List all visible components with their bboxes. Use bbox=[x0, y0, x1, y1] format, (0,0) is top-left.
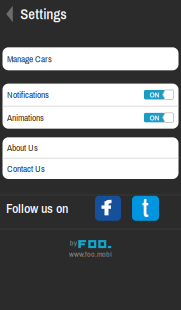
staticText: Manage Cars bbox=[7, 52, 52, 65]
staticText: Settings bbox=[20, 4, 66, 24]
button[interactable]: Contact Us bbox=[2, 158, 178, 179]
staticText: Follow us on bbox=[6, 199, 68, 217]
staticText: t bbox=[142, 191, 149, 225]
button[interactable]: Animations bbox=[2, 106, 178, 129]
staticText: Animations bbox=[7, 111, 44, 124]
staticText: ON bbox=[149, 89, 159, 100]
staticText: by bbox=[70, 237, 77, 248]
button[interactable]: About Us bbox=[2, 137, 178, 158]
staticText: www.foo.mobi bbox=[69, 249, 112, 259]
button[interactable]: Facebook bbox=[95, 196, 121, 221]
staticText: ON bbox=[149, 112, 159, 123]
button[interactable]: Settings bbox=[0, 0, 181, 28]
staticText: About Us bbox=[7, 141, 38, 154]
button[interactable]: Manage Cars bbox=[2, 47, 178, 70]
button[interactable]: Twitter bbox=[132, 196, 159, 221]
staticText: Notifications bbox=[7, 88, 49, 101]
staticText: Contact Us bbox=[7, 162, 45, 175]
button[interactable]: Notifications bbox=[2, 84, 178, 106]
